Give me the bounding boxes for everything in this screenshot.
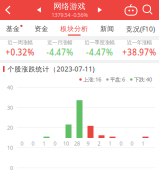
staticText: 近一季度涨幅 — [84, 39, 114, 46]
staticText: 30 — [7, 104, 13, 111]
staticText: 1 — [42, 140, 45, 147]
staticText: -4.47% — [46, 47, 73, 58]
staticText: 基金 — [6, 25, 20, 33]
staticText: 新闻 — [100, 25, 114, 33]
staticText: 上涨: 16 — [83, 76, 101, 83]
staticText: 1 — [141, 140, 144, 147]
staticText: 10 — [63, 140, 69, 147]
button[interactable]: Next sector — [95, 0, 104, 20]
staticText: 个股涨跌统计（2023-07-11) — [8, 65, 95, 73]
staticText: 下跌: 40 — [134, 76, 152, 83]
button[interactable]: 资金 — [34, 20, 48, 36]
staticText: 近一年涨幅 — [127, 39, 152, 46]
staticText: 28 — [74, 140, 80, 147]
staticText: 0 — [53, 140, 56, 147]
staticText: 网络游戏 — [53, 1, 85, 11]
button[interactable]: 新闻 — [100, 20, 114, 36]
staticText: 1379.54 -0.56% — [51, 11, 87, 18]
staticText: 0 — [31, 140, 34, 147]
button[interactable]: 板块分析 — [60, 20, 88, 36]
staticText: 资金 — [34, 25, 48, 33]
staticText: 9 — [86, 140, 89, 147]
staticText: 2 — [97, 140, 100, 147]
button[interactable]: Back — [0, 0, 16, 20]
staticText: 0 — [130, 140, 133, 147]
staticText: 1 — [108, 140, 111, 147]
staticText: 20 — [7, 124, 13, 131]
button[interactable]: AI assistant — [123, 0, 140, 20]
staticText: 板块分析 — [60, 25, 88, 33]
staticText: 近一月涨幅 — [47, 39, 72, 46]
staticText: 10 — [7, 144, 13, 151]
staticText: 40 — [7, 84, 13, 91]
button[interactable]: Search — [140, 0, 156, 20]
staticText: -4.47% — [86, 47, 113, 58]
staticText: 0 — [10, 164, 13, 171]
button[interactable]: Previous sector — [34, 0, 43, 20]
staticText: 0 — [119, 140, 122, 147]
button[interactable]: 竞况(F10) — [126, 20, 155, 36]
button[interactable]: 基金 — [6, 20, 22, 36]
staticText: +0.32% — [5, 47, 34, 58]
staticText: 竞况(F10) — [126, 24, 155, 33]
staticText: 平盘: 6 — [110, 76, 125, 83]
staticText: 近一周涨幅 — [7, 39, 32, 46]
staticText: +38.97% — [122, 47, 156, 58]
staticText: 0 — [20, 140, 23, 147]
